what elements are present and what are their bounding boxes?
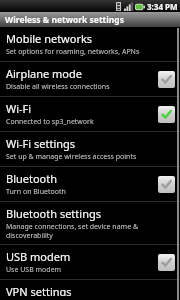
staticText: Connected to sp3_network [6, 117, 94, 127]
staticText: Manage connections, set device name & di… [6, 222, 175, 240]
staticText: Bluetooth settings [6, 206, 101, 221]
staticText: Mobile networks [6, 31, 93, 46]
button[interactable]: On [158, 106, 175, 123]
staticText: Bluetooth [6, 171, 58, 186]
staticText: Set options for roaming, networks, APNs [6, 47, 140, 57]
staticText: Disable all wireless connections [6, 82, 110, 92]
button[interactable]: Mobile networks [0, 27, 180, 61]
staticText: Wireless & network settings [5, 14, 124, 26]
staticText: Wi-Fi [6, 101, 32, 116]
button[interactable]: Off [158, 71, 175, 88]
button[interactable]: VPN settings [0, 280, 180, 300]
button[interactable]: Wi-Fi settings [0, 132, 180, 166]
button[interactable]: Off [158, 254, 175, 271]
staticText: USB modem [6, 249, 71, 264]
staticText: Turn on Bluetooth [6, 187, 66, 197]
staticText: Wi-Fi settings [6, 136, 76, 151]
staticText: VPN settings [6, 284, 72, 296]
button[interactable]: Airplane mode [0, 62, 180, 96]
button[interactable]: Bluetooth settings [0, 202, 180, 244]
staticText: Airplane mode [6, 66, 82, 81]
button[interactable]: Off [158, 176, 175, 193]
staticText: 3:34 PM [147, 1, 178, 12]
button[interactable]: USB modem [0, 245, 180, 279]
button[interactable]: Wi-Fi [0, 97, 180, 131]
staticText: Use USB modem [6, 265, 62, 275]
staticText: Set up & manage wireless access points [6, 152, 137, 162]
button[interactable]: Bluetooth [0, 167, 180, 201]
